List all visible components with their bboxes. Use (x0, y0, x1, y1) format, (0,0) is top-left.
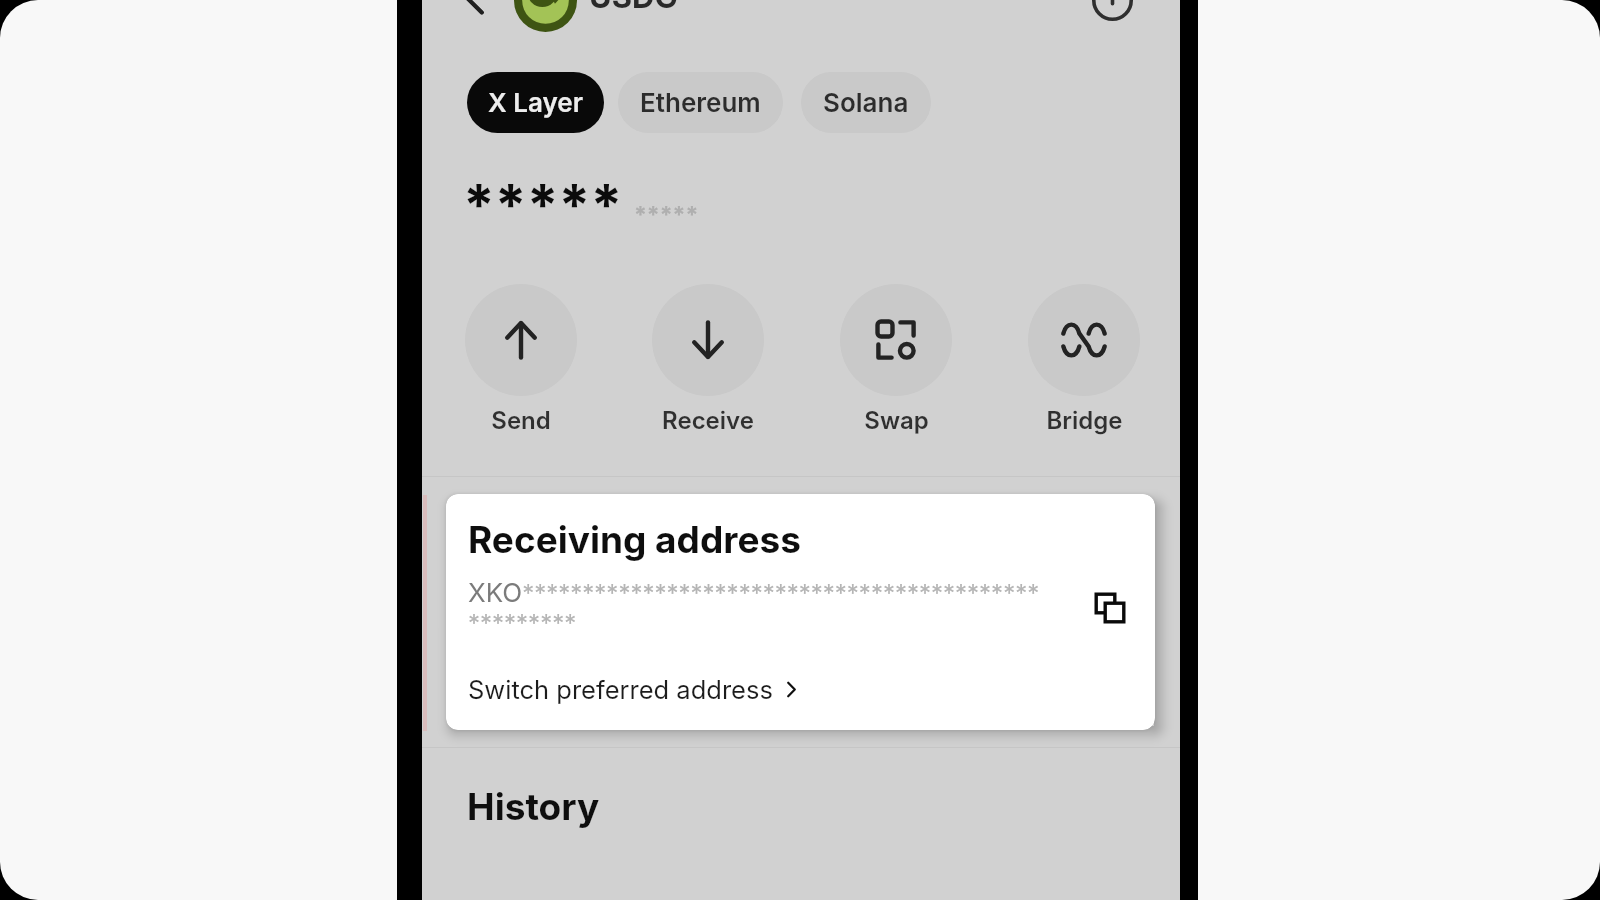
button[interactable]: Bridge (1009, 284, 1159, 435)
staticText: Send (491, 406, 551, 435)
button[interactable]: Solana (801, 72, 931, 133)
staticText: History (467, 784, 600, 829)
staticText: ***** (463, 170, 623, 239)
staticText: ***** (634, 201, 699, 229)
staticText: Receive (662, 406, 754, 435)
button[interactable]: Back (449, 0, 501, 25)
button[interactable]: X Layer (467, 72, 604, 133)
staticText: Bridge (1046, 406, 1123, 435)
button[interactable]: Receive (633, 284, 783, 435)
staticText: Switch preferred address (468, 674, 773, 705)
staticText: Solana (823, 87, 909, 118)
staticText: X Layer (488, 87, 583, 118)
staticText: Ethereum (640, 87, 761, 118)
staticText: XKO*************************************… (468, 577, 1046, 638)
button[interactable]: Switch preferred address (460, 668, 807, 711)
staticText: USDG (589, 0, 678, 16)
staticText: Swap (864, 406, 929, 435)
button[interactable]: Information (1084, 0, 1140, 28)
button[interactable]: Send (446, 284, 596, 435)
button[interactable]: Copy address (1084, 582, 1136, 634)
staticText: Receiving address (468, 517, 801, 562)
button[interactable]: Swap (821, 284, 971, 435)
button[interactable]: Ethereum (618, 72, 783, 133)
